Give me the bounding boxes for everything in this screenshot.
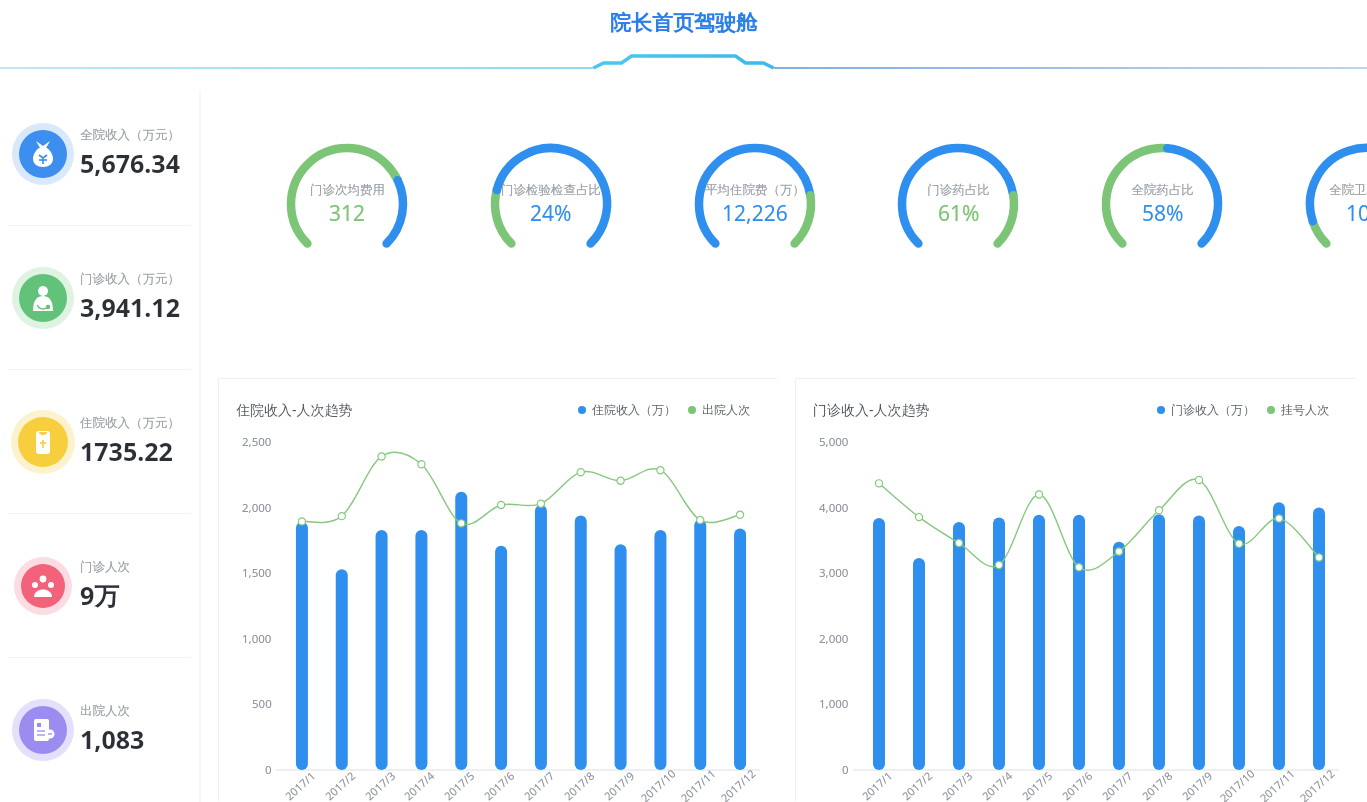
staticText: 门诊收入-人次趋势	[813, 400, 930, 419]
staticText: 门诊检验检查占比	[501, 182, 601, 198]
staticText: 住院收入（万）	[592, 402, 676, 417]
staticText: 1,083	[80, 722, 145, 756]
staticText: 2017/5	[1019, 768, 1055, 802]
staticText: 2017/7	[1099, 768, 1135, 802]
staticText: 2017/8	[1139, 768, 1175, 802]
staticText: 院长首页驾驶舱	[610, 10, 757, 36]
staticText: 2017/9	[601, 768, 637, 802]
staticText: 12,226	[722, 199, 788, 228]
staticText: 全院药占比	[1131, 182, 1194, 198]
staticText: 2017/4	[401, 768, 437, 802]
staticText: 1,000	[242, 631, 272, 647]
staticText: 500	[252, 696, 272, 712]
staticText: 61%	[938, 199, 980, 228]
staticText: 2017/12	[717, 766, 759, 802]
button[interactable]: 住院收入（万元）	[0, 370, 200, 513]
staticText: 2017/10	[637, 766, 679, 802]
button[interactable]: 住院收入-人次趋势	[218, 378, 778, 802]
staticText: 312	[329, 199, 366, 228]
staticText: 3,000	[819, 565, 849, 581]
staticText: 2017/3	[362, 768, 398, 802]
staticText: 4,000	[819, 500, 849, 516]
button[interactable]: 平均住院费（万）	[680, 140, 830, 265]
staticText: 2017/2	[322, 768, 358, 802]
staticText: 2017/1	[859, 768, 895, 802]
button[interactable]: 全院收入（万元）	[0, 82, 200, 225]
staticText: 门诊次均费用	[310, 182, 385, 198]
button[interactable]: 门诊检验检查占比	[476, 140, 626, 265]
staticText: 2017/8	[561, 768, 597, 802]
staticText: 住院收入（万元）	[80, 415, 180, 431]
staticText: 2017/4	[979, 768, 1015, 802]
staticText: 9万	[80, 578, 120, 612]
staticText: 门诊药占比	[927, 182, 990, 198]
staticText: 2,000	[242, 500, 272, 516]
staticText: 门诊收入（万）	[1171, 402, 1255, 417]
staticText: 平均住院费（万）	[705, 182, 805, 198]
staticText: 2,500	[242, 434, 272, 450]
staticText: 2017/3	[939, 768, 975, 802]
button[interactable]: 全院卫材占比	[1291, 140, 1367, 265]
staticText: 2017/6	[1059, 768, 1095, 802]
staticText: 24%	[530, 199, 572, 228]
staticText: 0	[842, 762, 849, 778]
staticText: 3,941.12	[80, 290, 180, 324]
staticText: 2017/11	[677, 766, 719, 802]
staticText: 出院人次	[702, 402, 750, 417]
staticText: 全院卫材占比	[1329, 182, 1367, 198]
button[interactable]: 门诊人次	[0, 514, 200, 657]
staticText: 出院人次	[80, 703, 130, 719]
button[interactable]: 门诊收入（万元）	[0, 226, 200, 369]
button[interactable]: 全院药占比	[1087, 140, 1237, 265]
staticText: 门诊收入（万元）	[80, 271, 180, 287]
staticText: 58%	[1142, 199, 1184, 228]
staticText: 5,676.34	[80, 146, 180, 180]
staticText: 2017/5	[441, 768, 477, 802]
staticText: 2017/12	[1296, 766, 1338, 802]
staticText: 2017/10	[1216, 766, 1258, 802]
staticText: 全院收入（万元）	[80, 127, 180, 143]
button[interactable]: 出院人次	[0, 658, 200, 801]
button[interactable]: 门诊次均费用	[272, 140, 422, 265]
staticText: 2017/1	[282, 768, 318, 802]
staticText: 2017/9	[1179, 768, 1215, 802]
staticText: 5,000	[819, 434, 849, 450]
staticText: 2017/6	[481, 768, 517, 802]
staticText: 挂号人次	[1281, 402, 1329, 417]
staticText: 10%	[1346, 199, 1367, 228]
staticText: 2017/11	[1256, 766, 1298, 802]
staticText: 1735.22	[80, 434, 173, 468]
staticText: 2017/7	[521, 768, 557, 802]
staticText: 0	[265, 762, 272, 778]
button[interactable]: 门诊药占比	[883, 140, 1033, 265]
button[interactable]: 门诊收入-人次趋势	[795, 378, 1357, 802]
staticText: 1,500	[242, 565, 272, 581]
staticText: 2,000	[819, 631, 849, 647]
staticText: 1,000	[819, 696, 849, 712]
staticText: 门诊人次	[80, 559, 130, 575]
staticText: 住院收入-人次趋势	[236, 400, 353, 419]
staticText: 2017/2	[899, 768, 935, 802]
